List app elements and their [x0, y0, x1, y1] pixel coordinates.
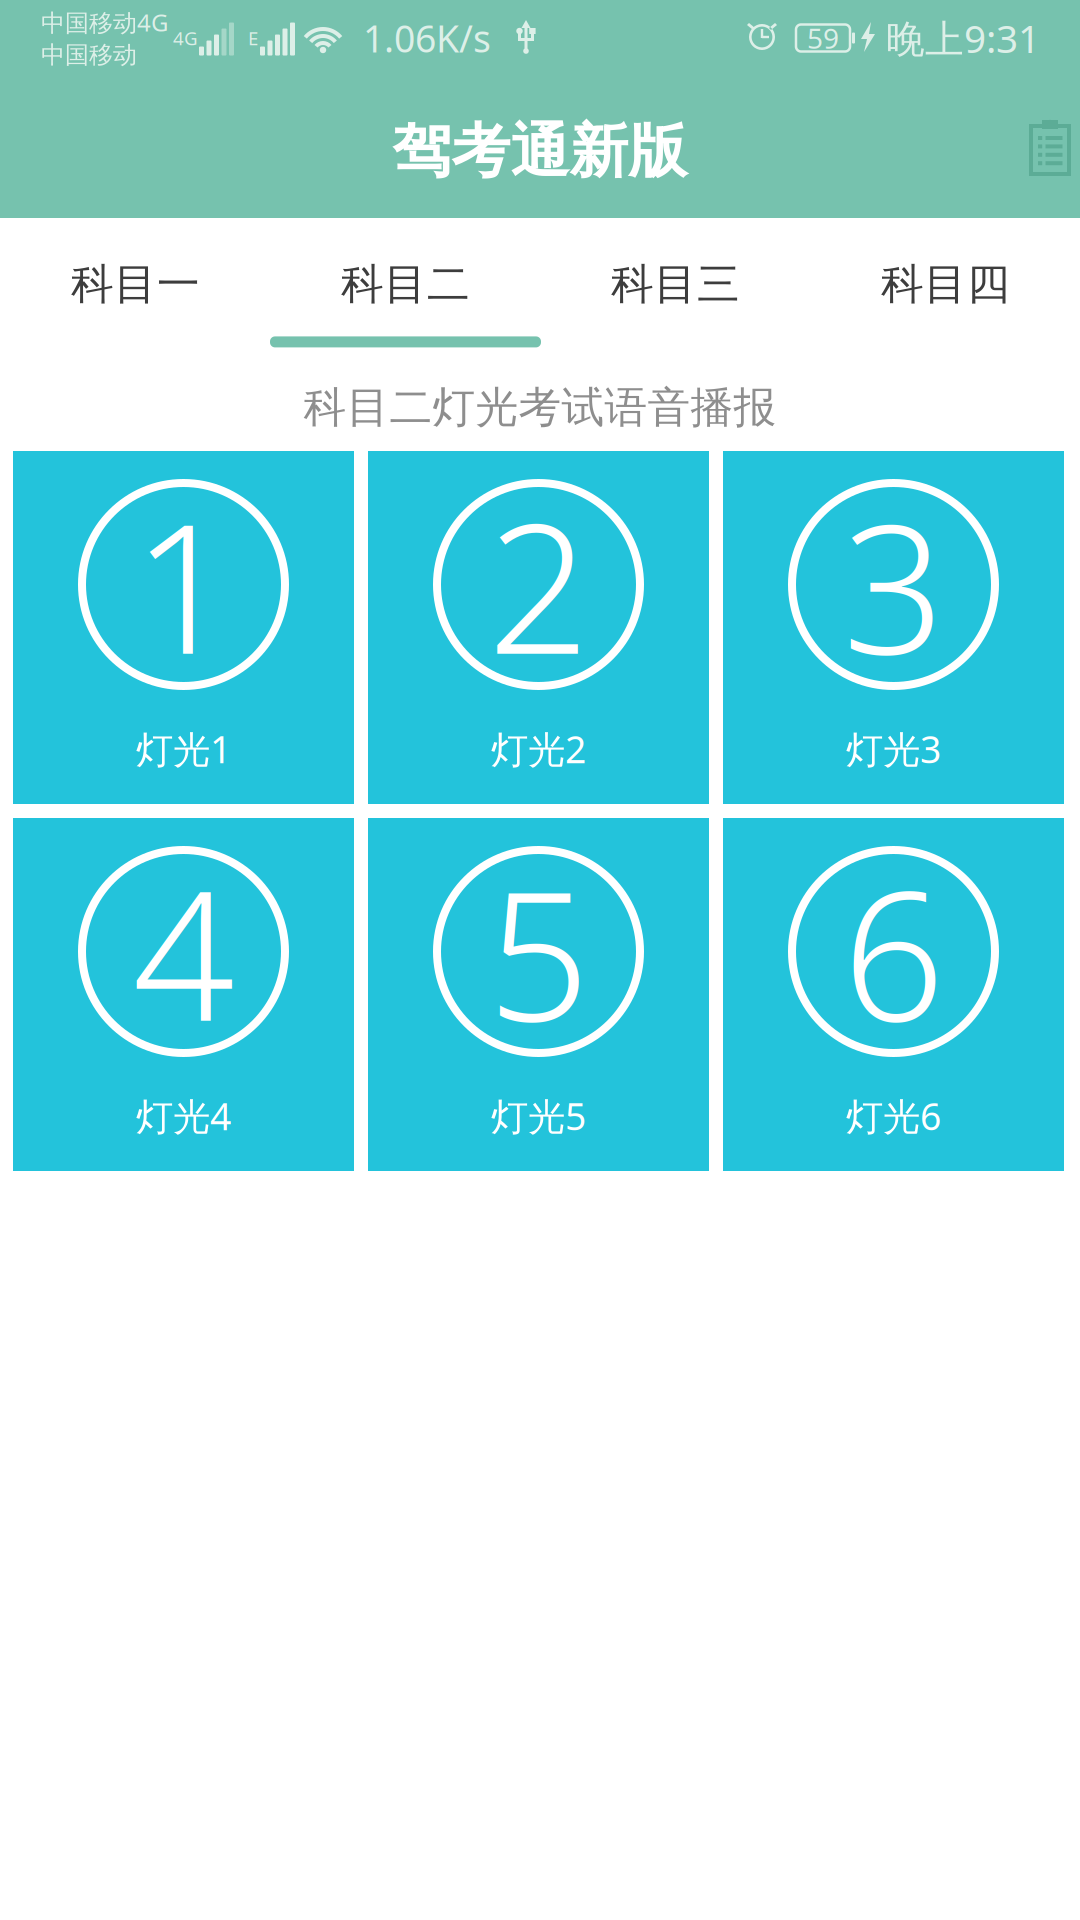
button[interactable]: 科目二: [270, 218, 540, 364]
staticText: 灯光1: [136, 724, 231, 774]
staticText: 灯光4: [136, 1091, 231, 1141]
staticText: 灯光3: [846, 724, 941, 774]
staticText: 3: [842, 466, 944, 703]
button[interactable]: 科目三: [540, 218, 810, 364]
button[interactable]: 6: [723, 818, 1064, 1171]
staticText: 中国移动: [41, 40, 137, 70]
staticText: 灯光2: [491, 724, 586, 774]
staticText: 6: [842, 833, 944, 1070]
staticText: 灯光5: [491, 1091, 586, 1141]
staticText: 59: [807, 19, 839, 57]
staticText: 科目二灯光考试语音播报: [303, 381, 776, 434]
staticText: 4G: [173, 26, 198, 50]
button[interactable]: 5: [368, 818, 709, 1171]
button[interactable]: 考试记录: [1020, 87, 1080, 207]
button[interactable]: 2: [368, 451, 709, 804]
button[interactable]: 科目一: [0, 218, 270, 364]
staticText: 科目三: [611, 258, 740, 310]
button[interactable]: 3: [723, 451, 1064, 804]
staticText: 4: [132, 833, 234, 1070]
button[interactable]: 4: [13, 818, 354, 1171]
staticText: 科目四: [881, 258, 1010, 310]
staticText: 中国移动4G: [41, 6, 168, 38]
staticText: 科目二: [341, 258, 470, 310]
staticText: 灯光6: [846, 1091, 941, 1141]
button[interactable]: 科目四: [810, 218, 1080, 364]
staticText: 1.06K/s: [363, 13, 491, 63]
staticText: 科目一: [71, 258, 200, 310]
staticText: 晚上9:31: [886, 12, 1040, 64]
button[interactable]: 1: [13, 451, 354, 804]
staticText: 5: [487, 833, 589, 1070]
staticText: E: [248, 26, 258, 50]
staticText: 1: [132, 466, 234, 703]
staticText: 2: [487, 466, 589, 703]
staticText: 驾考通新版: [392, 115, 687, 188]
